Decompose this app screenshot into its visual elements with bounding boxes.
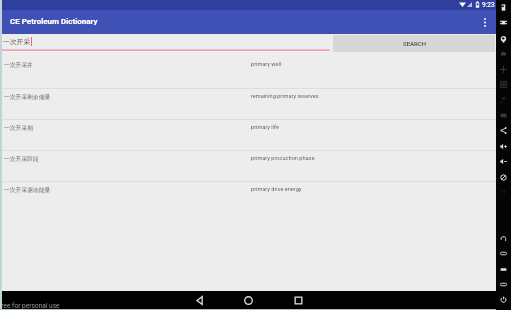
button[interactable]: Notes (496, 263, 511, 276)
button[interactable]: Screenshot (496, 47, 511, 60)
staticText: 一次开采剩余储量 (4, 93, 251, 100)
button[interactable]: 一次开采剩余储量 (0, 89, 496, 120)
button[interactable]: 一次开采井 (0, 57, 496, 89)
button[interactable]: 一次开采阶段 (0, 151, 496, 182)
staticText: CE Petroleum Dictionary (10, 17, 98, 26)
button[interactable]: Power (496, 1, 511, 14)
staticText: primary drive energy (251, 186, 302, 193)
staticText: 一次开采 (3, 37, 31, 46)
button[interactable]: Messages (496, 109, 511, 122)
button[interactable]: Rotate (496, 32, 511, 45)
button[interactable]: Volume (496, 16, 511, 29)
staticText: 一次开采阶段 (4, 155, 251, 162)
button[interactable]: 一次开采 (0, 34, 330, 51)
button[interactable]: Location (496, 171, 511, 184)
button[interactable]: Back (189, 291, 209, 310)
staticText: primary life (251, 124, 279, 131)
button[interactable]: Volume up (496, 140, 511, 153)
button[interactable]: Volume down (496, 155, 511, 168)
button[interactable]: More options (474, 10, 496, 34)
button[interactable]: 一次开采期 (0, 120, 496, 151)
button[interactable]: Fingerprint (496, 78, 511, 91)
button[interactable]: SEARCH (333, 35, 495, 52)
button[interactable]: Cellular (496, 94, 511, 107)
staticText: 一次开采期 (4, 124, 251, 131)
button[interactable]: Record (496, 293, 511, 306)
staticText: primary procuction phase (251, 155, 315, 162)
button[interactable]: 一次开采驱动能量 (0, 182, 496, 213)
button[interactable]: Recents (288, 291, 308, 310)
staticText: primary well (251, 61, 282, 68)
button[interactable]: Back (496, 232, 511, 245)
staticText: remaining primary reserves (251, 93, 319, 100)
staticText: 一次开采井 (4, 61, 251, 68)
button[interactable]: Zoom (496, 63, 511, 76)
button[interactable]: Home (238, 291, 258, 310)
staticText: free for personal use (0, 302, 60, 310)
staticText: 9:23 (482, 1, 495, 9)
button[interactable]: More (496, 186, 511, 199)
staticText: 一次开采驱动能量 (4, 186, 251, 193)
button[interactable]: Snapshot (496, 278, 511, 291)
staticText: SEARCH (403, 40, 426, 47)
button[interactable]: Share (496, 124, 511, 137)
button[interactable]: Overview (496, 247, 511, 260)
